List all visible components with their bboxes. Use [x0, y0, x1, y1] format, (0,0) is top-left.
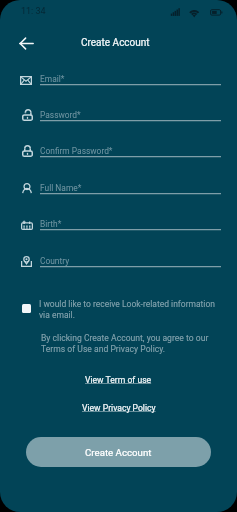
button[interactable]: View Term of use — [85, 375, 152, 385]
button[interactable]: I would like to receive Look-related inf… — [22, 299, 222, 323]
staticText: Full Name* — [40, 183, 82, 193]
staticText: Create Account — [81, 37, 150, 49]
button[interactable]: Email* — [0, 65, 237, 89]
button[interactable]: Back — [12, 29, 40, 57]
staticText: Birth* — [40, 219, 62, 229]
staticText: Country — [40, 256, 70, 266]
button[interactable]: Country — [0, 247, 237, 271]
staticText: Confirm Password* — [40, 146, 113, 156]
button[interactable]: Birth* — [0, 210, 237, 234]
button[interactable]: View Privacy Policy — [82, 403, 156, 413]
staticText: I would like to receive Look-related inf… — [39, 299, 219, 320]
staticText: Password* — [40, 110, 81, 120]
staticText: 11: 34 — [21, 6, 46, 17]
button[interactable]: Create Account — [26, 437, 211, 467]
staticText: Email* — [40, 74, 65, 84]
staticText: Create Account — [85, 447, 152, 458]
staticText: By clicking Create Account, you agree to… — [41, 333, 213, 354]
button[interactable]: Password* — [0, 101, 237, 125]
button[interactable]: Full Name* — [0, 174, 237, 198]
button[interactable]: Confirm Password* — [0, 137, 237, 161]
